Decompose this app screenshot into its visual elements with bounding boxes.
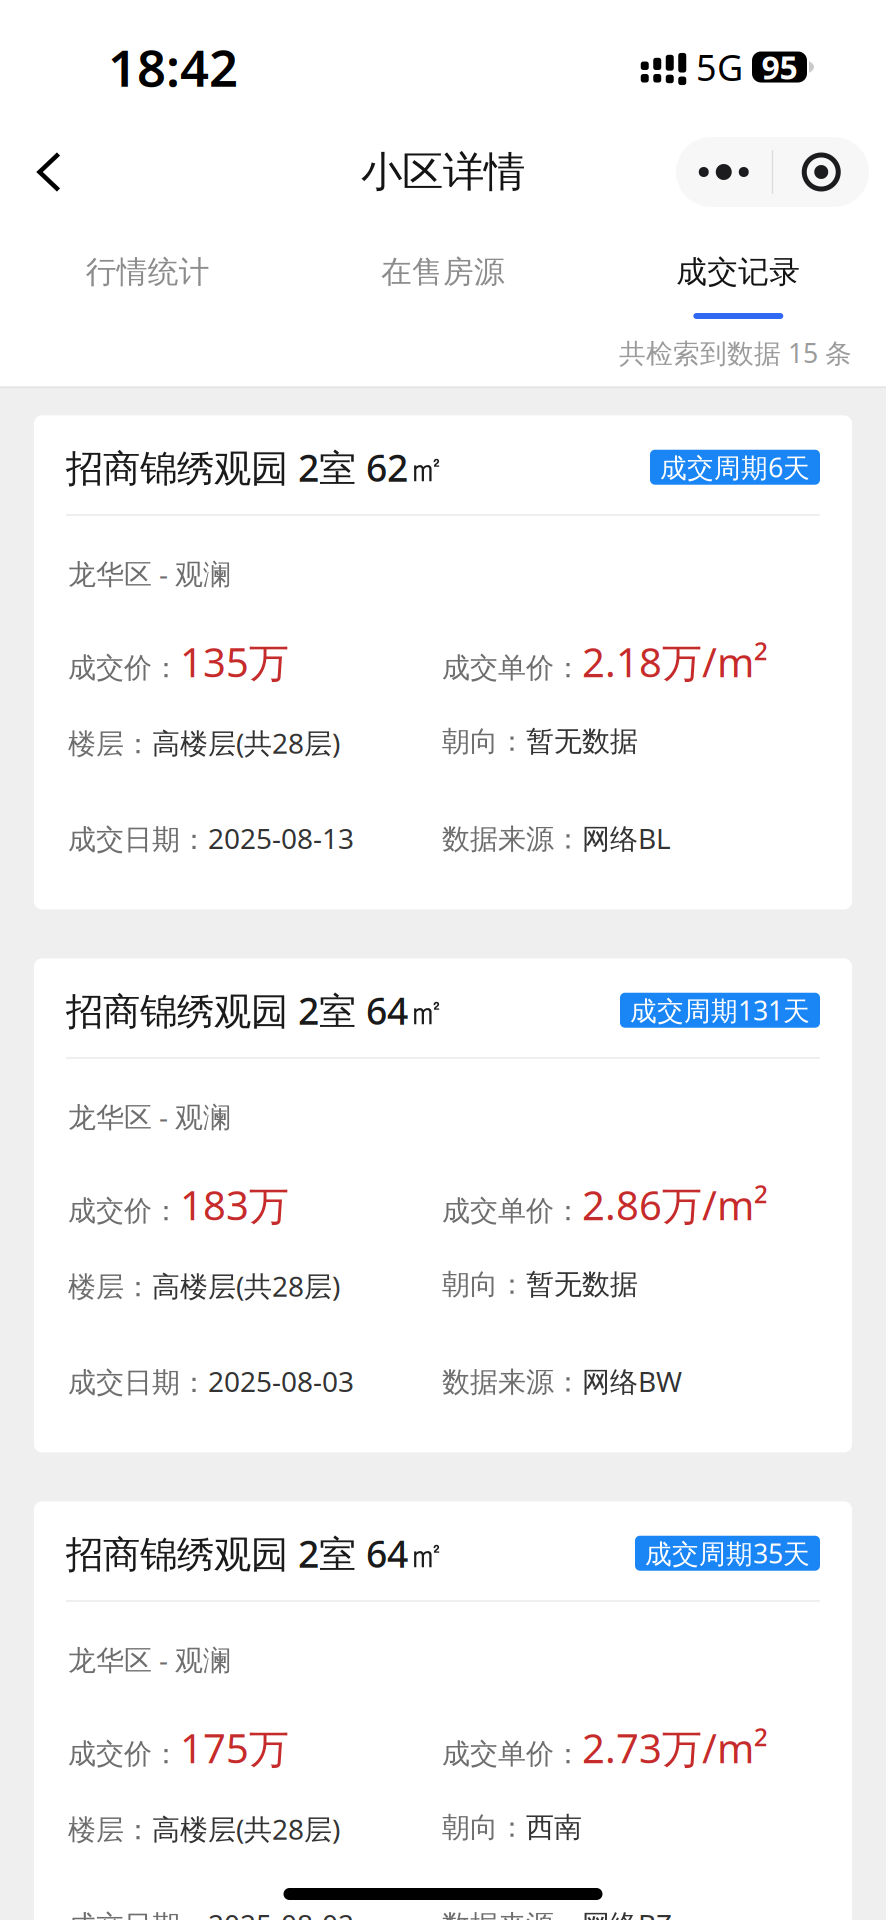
staticText: 成交周期6天 bbox=[660, 449, 810, 485]
staticText: 楼层： bbox=[68, 1813, 152, 1847]
staticText: 招商锦绣观园 2室 64㎡ bbox=[66, 1528, 445, 1578]
staticText: 成交单价： bbox=[442, 1194, 582, 1228]
staticText: 成交日期： bbox=[68, 822, 208, 857]
staticText: 楼层： bbox=[68, 1270, 152, 1304]
staticText: 18:42 bbox=[108, 33, 238, 101]
button[interactable]: 成交记录 bbox=[591, 254, 886, 319]
staticText: 暂无数据 bbox=[526, 724, 638, 759]
staticText: 龙华区 - 观澜 bbox=[68, 555, 231, 592]
staticText: 招商锦绣观园 2室 62㎡ bbox=[66, 442, 445, 492]
staticText: 2025-08-13 bbox=[208, 819, 354, 857]
staticText: 175万 bbox=[180, 1721, 289, 1774]
staticText: 2.73万/m² bbox=[582, 1721, 768, 1774]
staticText: 楼层： bbox=[68, 727, 152, 761]
staticText: 成交价： bbox=[68, 1194, 180, 1228]
staticText: 高楼层(共28层) bbox=[152, 724, 340, 761]
staticText: 2025-08-03 bbox=[208, 1362, 354, 1400]
staticText: 成交记录 bbox=[676, 253, 800, 291]
button[interactable]: Close mini program bbox=[773, 137, 869, 207]
button[interactable]: 在售房源 bbox=[295, 254, 591, 319]
staticText: 高楼层(共28层) bbox=[152, 1267, 340, 1304]
staticText: 共检索到数据 15 条 bbox=[619, 335, 852, 370]
staticText: 2.86万/m² bbox=[582, 1178, 768, 1231]
staticText: 成交价： bbox=[68, 1737, 180, 1771]
staticText: 5G bbox=[696, 43, 743, 91]
staticText: 数据来源： bbox=[442, 822, 582, 856]
staticText: 朝向： bbox=[442, 724, 526, 759]
staticText: 龙华区 - 观澜 bbox=[68, 1641, 231, 1678]
staticText: 网络BL bbox=[582, 819, 671, 857]
button[interactable]: More options bbox=[676, 137, 772, 207]
staticText: 183万 bbox=[180, 1178, 289, 1231]
staticText: 2025-08-02 bbox=[208, 1905, 354, 1920]
staticText: 成交周期35天 bbox=[645, 1535, 810, 1571]
button[interactable]: 行情统计 bbox=[0, 254, 295, 319]
staticText: 数据来源： bbox=[442, 1365, 582, 1399]
staticText: 成交单价： bbox=[442, 651, 582, 685]
staticText: 2.18万/m² bbox=[582, 635, 768, 688]
staticText: 行情统计 bbox=[86, 253, 210, 291]
staticText: 成交周期131天 bbox=[630, 992, 810, 1028]
staticText: 暂无数据 bbox=[526, 1267, 638, 1302]
staticText: 在售房源 bbox=[381, 253, 505, 291]
staticText: 龙华区 - 观澜 bbox=[68, 1098, 231, 1135]
staticText: 高楼层(共28层) bbox=[152, 1810, 340, 1847]
staticText: 小区详情 bbox=[361, 147, 525, 197]
staticText: 招商锦绣观园 2室 64㎡ bbox=[66, 985, 445, 1035]
staticText: 95 bbox=[761, 46, 797, 88]
staticText: 成交日期： bbox=[68, 1908, 208, 1920]
staticText: 135万 bbox=[180, 635, 289, 688]
staticText: 网络BZ bbox=[582, 1905, 672, 1920]
staticText: 朝向： bbox=[442, 1267, 526, 1302]
staticText: 成交价： bbox=[68, 651, 180, 685]
staticText: 成交单价： bbox=[442, 1737, 582, 1771]
staticText: 西南 bbox=[526, 1810, 582, 1845]
staticText: 数据来源： bbox=[442, 1908, 582, 1920]
button[interactable]: Back bbox=[14, 137, 84, 207]
staticText: 成交日期： bbox=[68, 1365, 208, 1400]
staticText: 网络BW bbox=[582, 1362, 682, 1400]
staticText: 朝向： bbox=[442, 1810, 526, 1845]
